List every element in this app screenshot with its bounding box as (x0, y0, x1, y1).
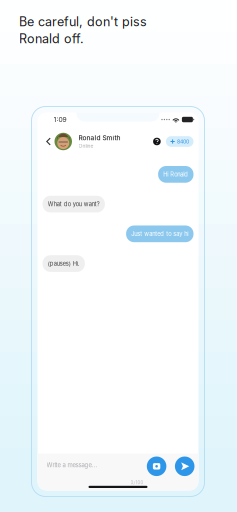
staticText: Be careful, don't piss (19, 14, 147, 29)
button[interactable]: Send (175, 456, 194, 476)
staticText: (pauses) Hi. (48, 260, 80, 267)
staticText: What do you want? (48, 201, 100, 207)
staticText: Write a message... (46, 461, 97, 469)
staticText: Ronald Smith (78, 134, 120, 142)
staticText: Hi Ronald (163, 171, 188, 178)
staticText: Online (78, 143, 93, 149)
button[interactable]: 8400 (166, 136, 193, 147)
staticText: 1:09 (53, 115, 66, 124)
staticText: Just wanted to say hi (131, 230, 188, 237)
staticText: Ronald off. (19, 31, 84, 46)
staticText: 0/100 (130, 480, 143, 485)
staticText: 8400 (177, 138, 189, 145)
button[interactable]: Back (42, 130, 54, 152)
button[interactable]: Help (151, 135, 162, 148)
button[interactable]: Attach photo (147, 456, 166, 476)
